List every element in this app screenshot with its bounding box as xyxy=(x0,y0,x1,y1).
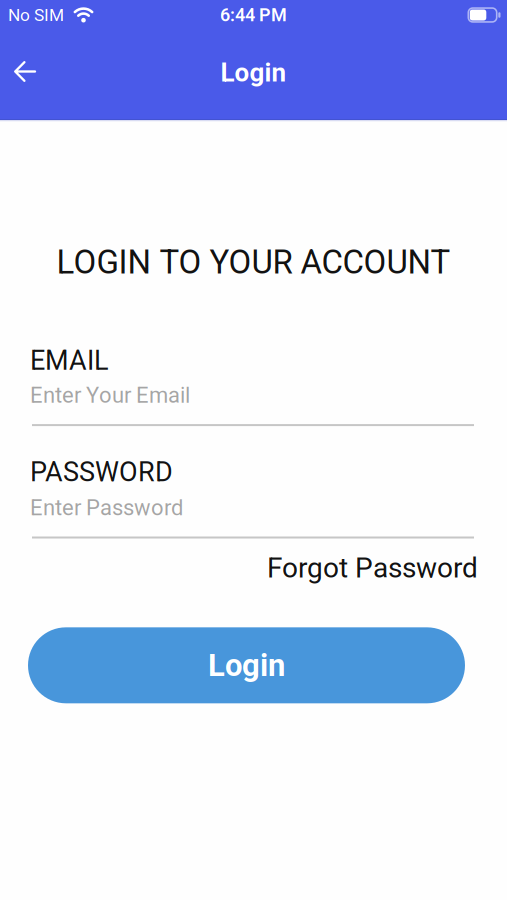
staticText: 6:44 PM xyxy=(220,4,287,26)
staticText: Enter Password xyxy=(30,495,183,520)
staticText: LOGIN TO YOUR ACCOUNT xyxy=(56,243,450,282)
staticText: Login xyxy=(220,57,286,88)
staticText: PASSWORD xyxy=(30,456,173,488)
button[interactable]: Forgot Password xyxy=(267,551,478,584)
staticText: Forgot Password xyxy=(267,551,478,584)
button[interactable]: Back xyxy=(0,51,52,92)
button[interactable]: Login xyxy=(28,627,465,703)
staticText: No SIM xyxy=(8,5,64,25)
staticText: Enter Your Email xyxy=(30,382,190,408)
staticText: EMAIL xyxy=(30,345,109,376)
staticText: Login xyxy=(208,647,285,683)
